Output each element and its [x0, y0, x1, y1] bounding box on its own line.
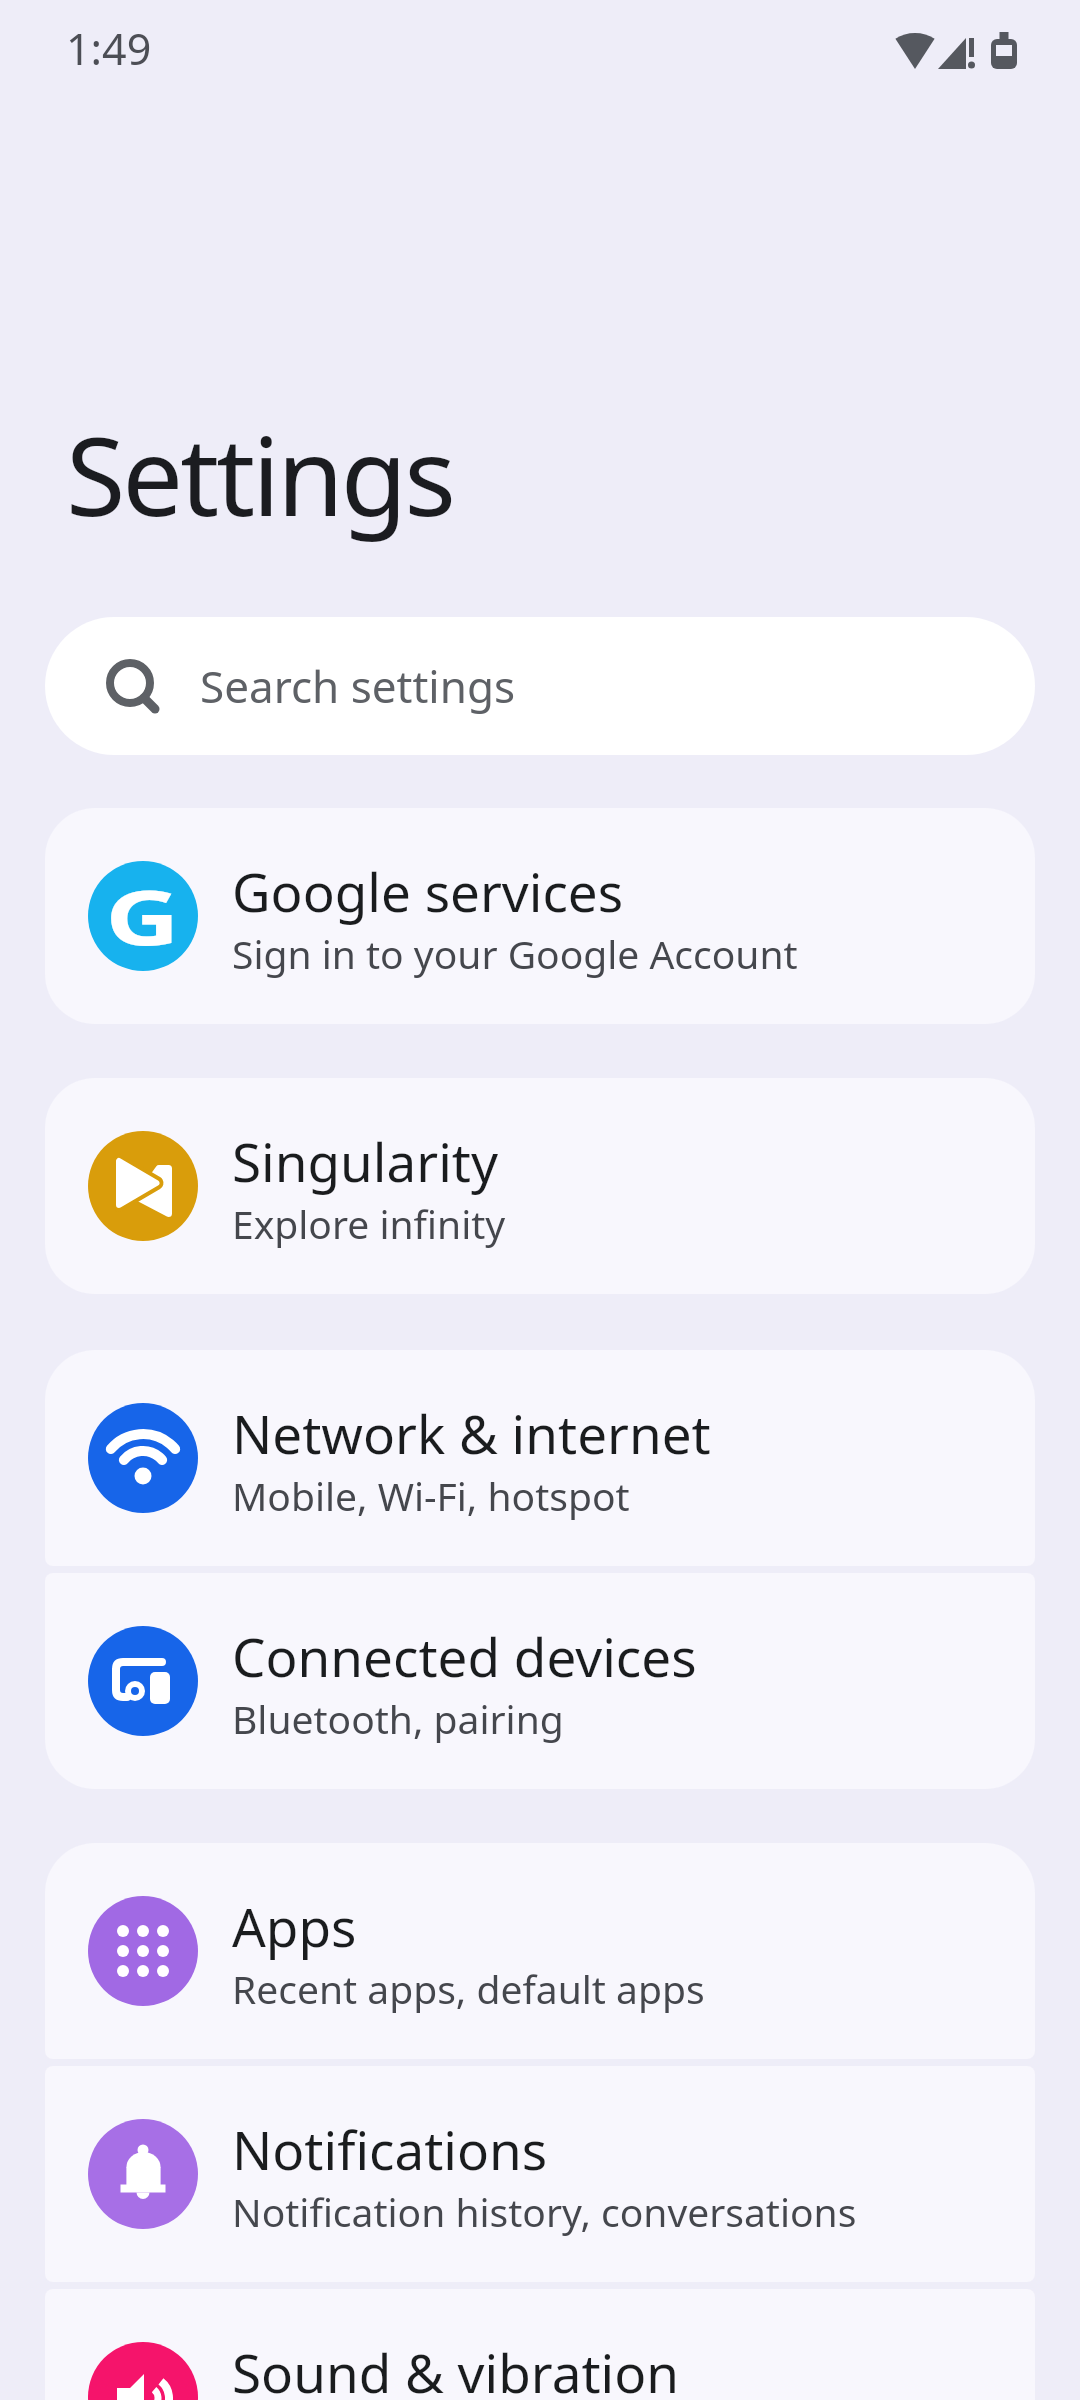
- staticText: Notification history, conversations: [232, 2185, 857, 2238]
- staticText: Apps: [232, 1890, 357, 1962]
- staticText: Recent apps, default apps: [232, 1962, 705, 2015]
- staticText: Singularity: [232, 1125, 499, 1197]
- staticText: Google services: [232, 855, 624, 927]
- staticText: Explore infinity: [232, 1197, 506, 1250]
- button[interactable]: Network & internet: [45, 1350, 1035, 1566]
- button[interactable]: Sound & vibration: [45, 2289, 1035, 2400]
- staticText: Sound & vibration: [232, 2336, 680, 2400]
- staticText: 1:49: [66, 19, 152, 78]
- button[interactable]: G: [45, 808, 1035, 1024]
- staticText: Bluetooth, pairing: [232, 1692, 564, 1745]
- staticText: Connected devices: [232, 1620, 697, 1692]
- button[interactable]: Apps: [45, 1843, 1035, 2059]
- button[interactable]: Search settings: [45, 617, 1035, 755]
- staticText: G: [105, 864, 181, 968]
- button[interactable]: Notifications: [45, 2066, 1035, 2282]
- staticText: Network & internet: [232, 1397, 711, 1469]
- staticText: Sign in to your Google Account: [232, 927, 798, 980]
- button[interactable]: Singularity: [45, 1078, 1035, 1294]
- staticText: Mobile, Wi-Fi, hotspot: [232, 1469, 630, 1522]
- staticText: Notifications: [232, 2113, 548, 2185]
- staticText: Search settings: [200, 656, 516, 716]
- staticText: Settings: [66, 401, 453, 548]
- button[interactable]: Connected devices: [45, 1573, 1035, 1789]
